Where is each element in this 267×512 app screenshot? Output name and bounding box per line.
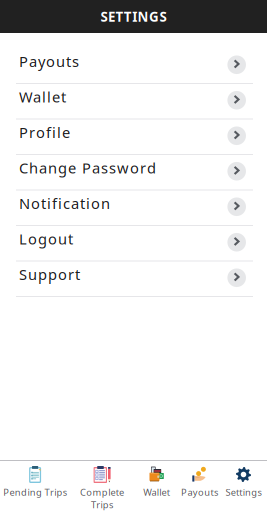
button[interactable]: Logout [0, 226, 267, 260]
button[interactable]: Notification [0, 190, 267, 225]
button[interactable]: Payouts [179, 460, 220, 512]
button[interactable]: Wallet [134, 460, 179, 512]
staticText: Change Password [19, 158, 156, 177]
staticText: Notification [19, 193, 110, 213]
button[interactable]: Wallet [0, 84, 267, 118]
staticText: Payouts [181, 486, 218, 498]
staticText: SETTINGS [101, 8, 166, 25]
button[interactable]: Payouts [0, 48, 267, 83]
button[interactable]: Profile [0, 119, 267, 154]
staticText: Pending Trips [3, 486, 67, 498]
staticText: Wallet [143, 486, 170, 498]
button[interactable]: Complete [70, 460, 134, 512]
staticText: Trips [91, 498, 113, 511]
staticText: Support [19, 264, 80, 284]
staticText: Complete [80, 486, 124, 498]
staticText: Payouts [19, 51, 79, 71]
staticText: Wallet [19, 87, 66, 106]
button[interactable]: Support [0, 261, 267, 296]
staticText: Logout [19, 229, 73, 248]
button[interactable]: Change Password [0, 155, 267, 189]
button[interactable]: Pending Trips [0, 460, 70, 512]
button[interactable]: Settings [220, 460, 267, 512]
staticText: Profile [19, 122, 70, 142]
staticText: Settings [225, 486, 262, 498]
